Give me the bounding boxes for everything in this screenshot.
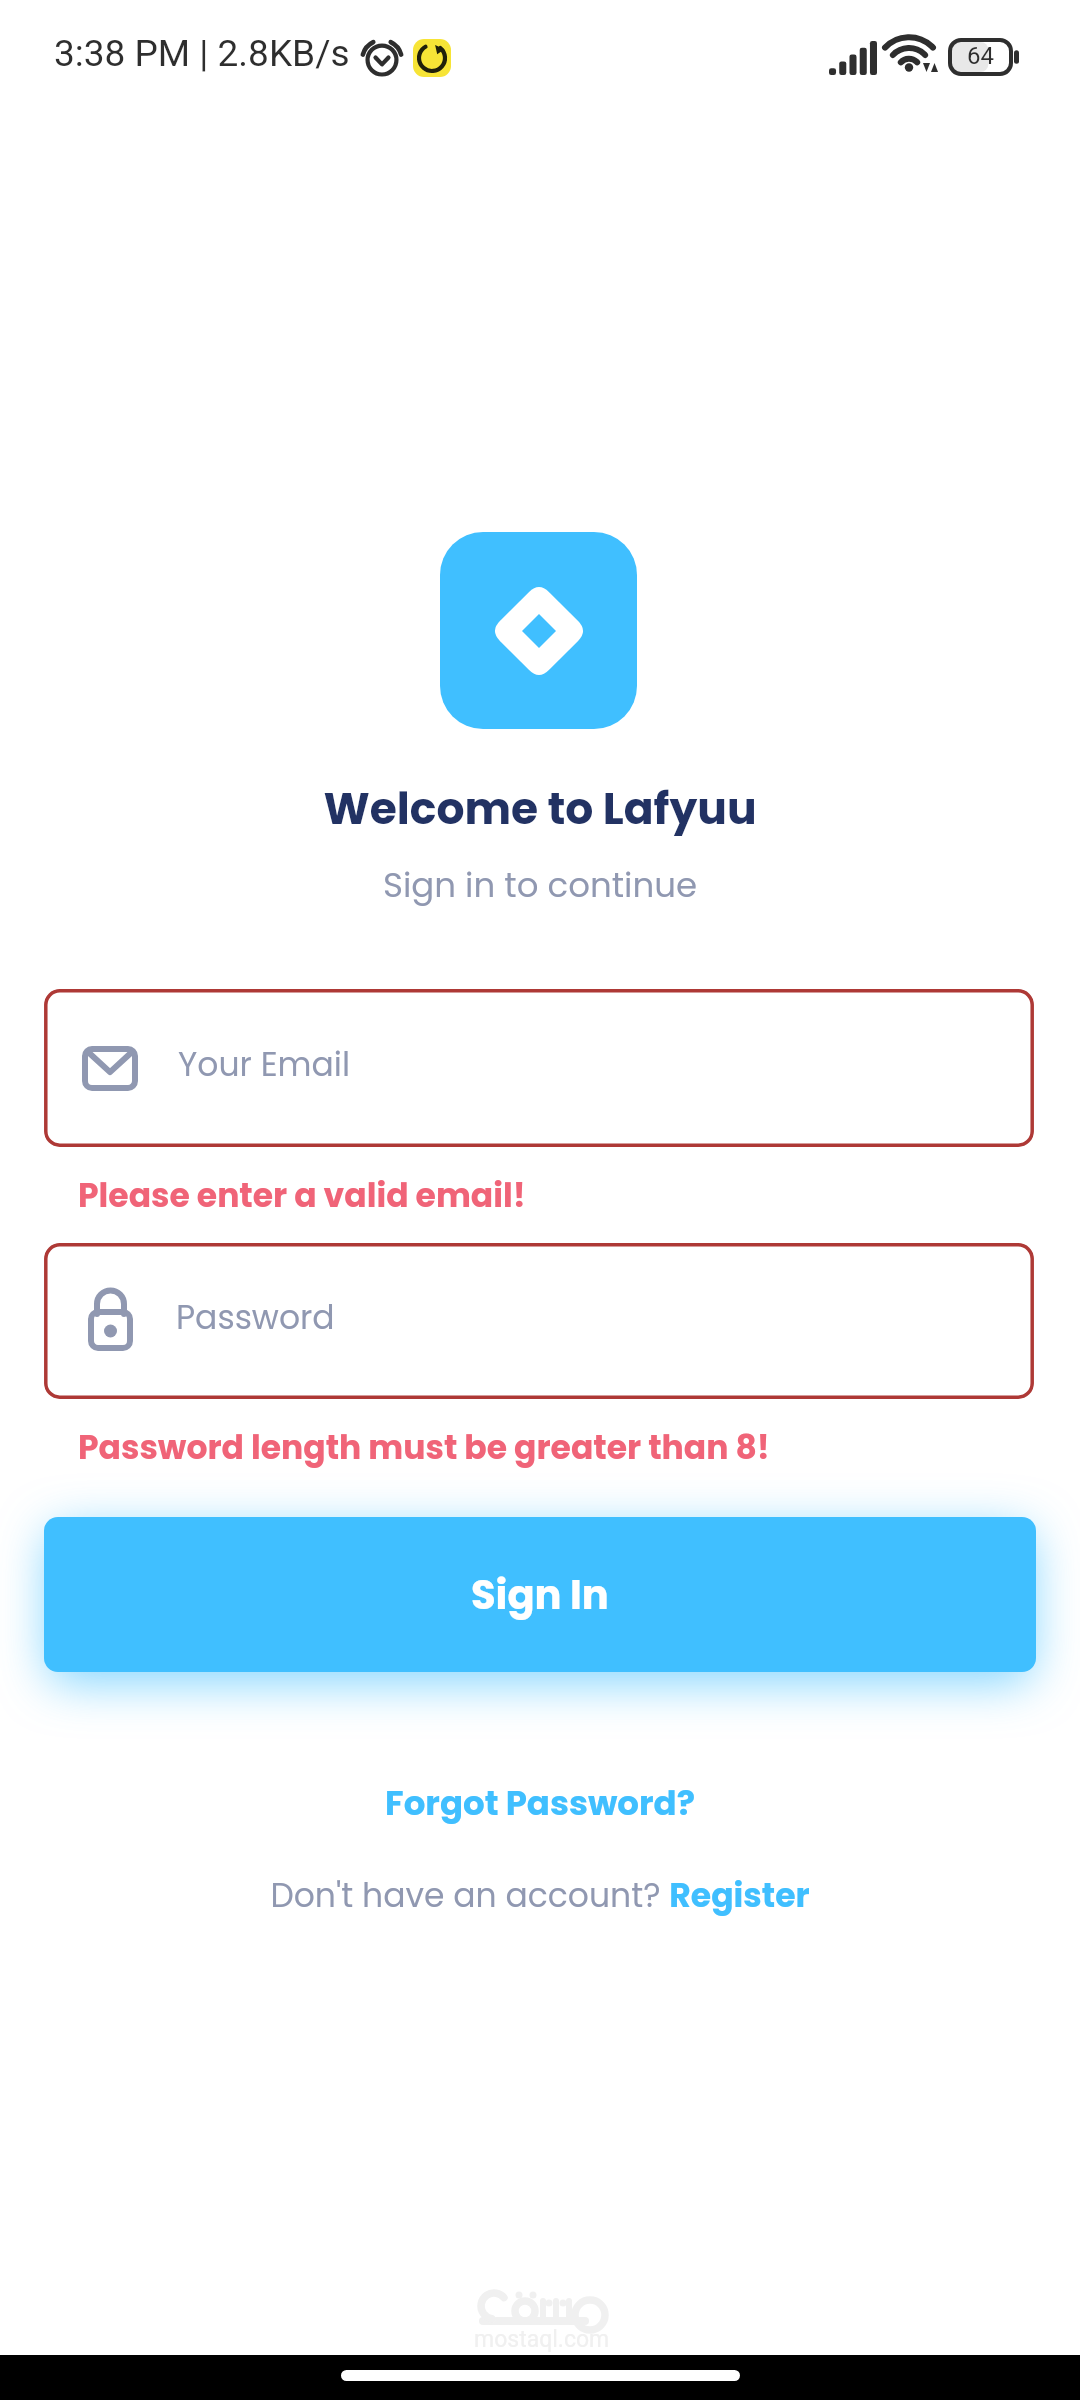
staticText: 3:38 PM | 2.8KB/s	[54, 32, 350, 75]
staticText: Please enter a valid email!	[78, 1172, 526, 1218]
button[interactable]: Your Email	[44, 989, 1034, 1147]
staticText: Don't have an account? Register	[265, 1872, 815, 1918]
button[interactable]: Password	[44, 1243, 1034, 1399]
staticText: 64	[967, 42, 994, 70]
button[interactable]: Sign In	[44, 1517, 1036, 1672]
button[interactable]: Don't have an account? Register	[265, 1869, 815, 1921]
staticText: Sign In	[471, 1567, 609, 1623]
staticText: Forgot Password?	[380, 1779, 700, 1827]
staticText: Password	[176, 1294, 335, 1340]
staticText: Welcome to Lafyuu	[0, 778, 1080, 840]
button[interactable]: Forgot Password?	[380, 1778, 700, 1828]
staticText: mostaql.com	[474, 2326, 610, 2353]
staticText: Sign in to continue	[0, 861, 1080, 909]
staticText: Your Email	[178, 1041, 351, 1087]
staticText: Password length must be greater than 8!	[78, 1424, 770, 1470]
